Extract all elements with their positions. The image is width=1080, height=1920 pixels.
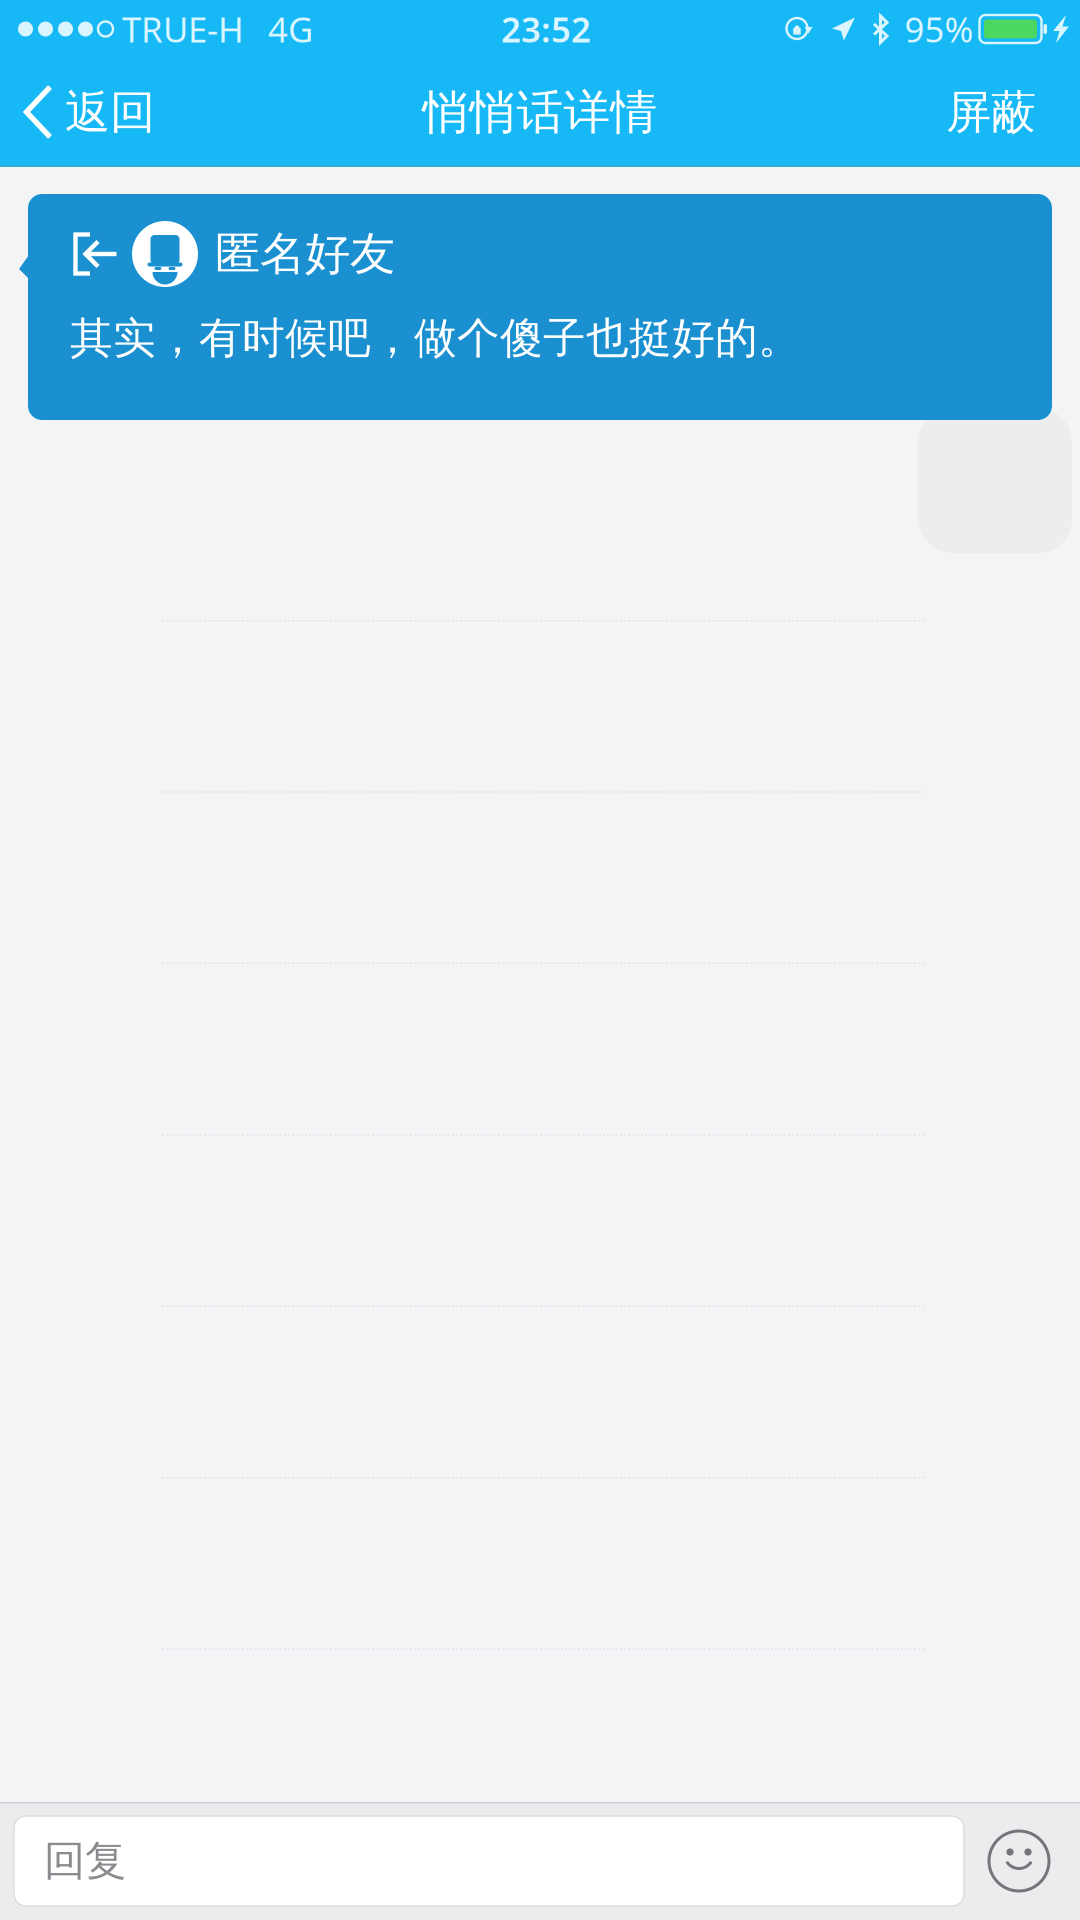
staticText: 回复 bbox=[44, 1836, 126, 1886]
staticText: 23:52 bbox=[501, 6, 591, 52]
staticText: 悄悄话详情 bbox=[422, 84, 657, 141]
staticText: TRUE-H bbox=[122, 6, 244, 52]
button[interactable]: 返回 bbox=[0, 58, 175, 167]
staticText: 返回 bbox=[65, 85, 155, 140]
staticText: 屏蔽 bbox=[946, 85, 1036, 140]
staticText: 4G bbox=[268, 6, 313, 52]
staticText: 95% bbox=[904, 6, 973, 52]
button[interactable]: Emoji bbox=[964, 1803, 1074, 1919]
staticText: 匿名好友 bbox=[215, 226, 395, 282]
button[interactable]: 屏蔽 bbox=[922, 58, 1080, 167]
button[interactable]: 回复 bbox=[14, 1816, 964, 1906]
staticText: 其实，有时候吧，做个傻子也挺好的。 bbox=[70, 312, 801, 364]
